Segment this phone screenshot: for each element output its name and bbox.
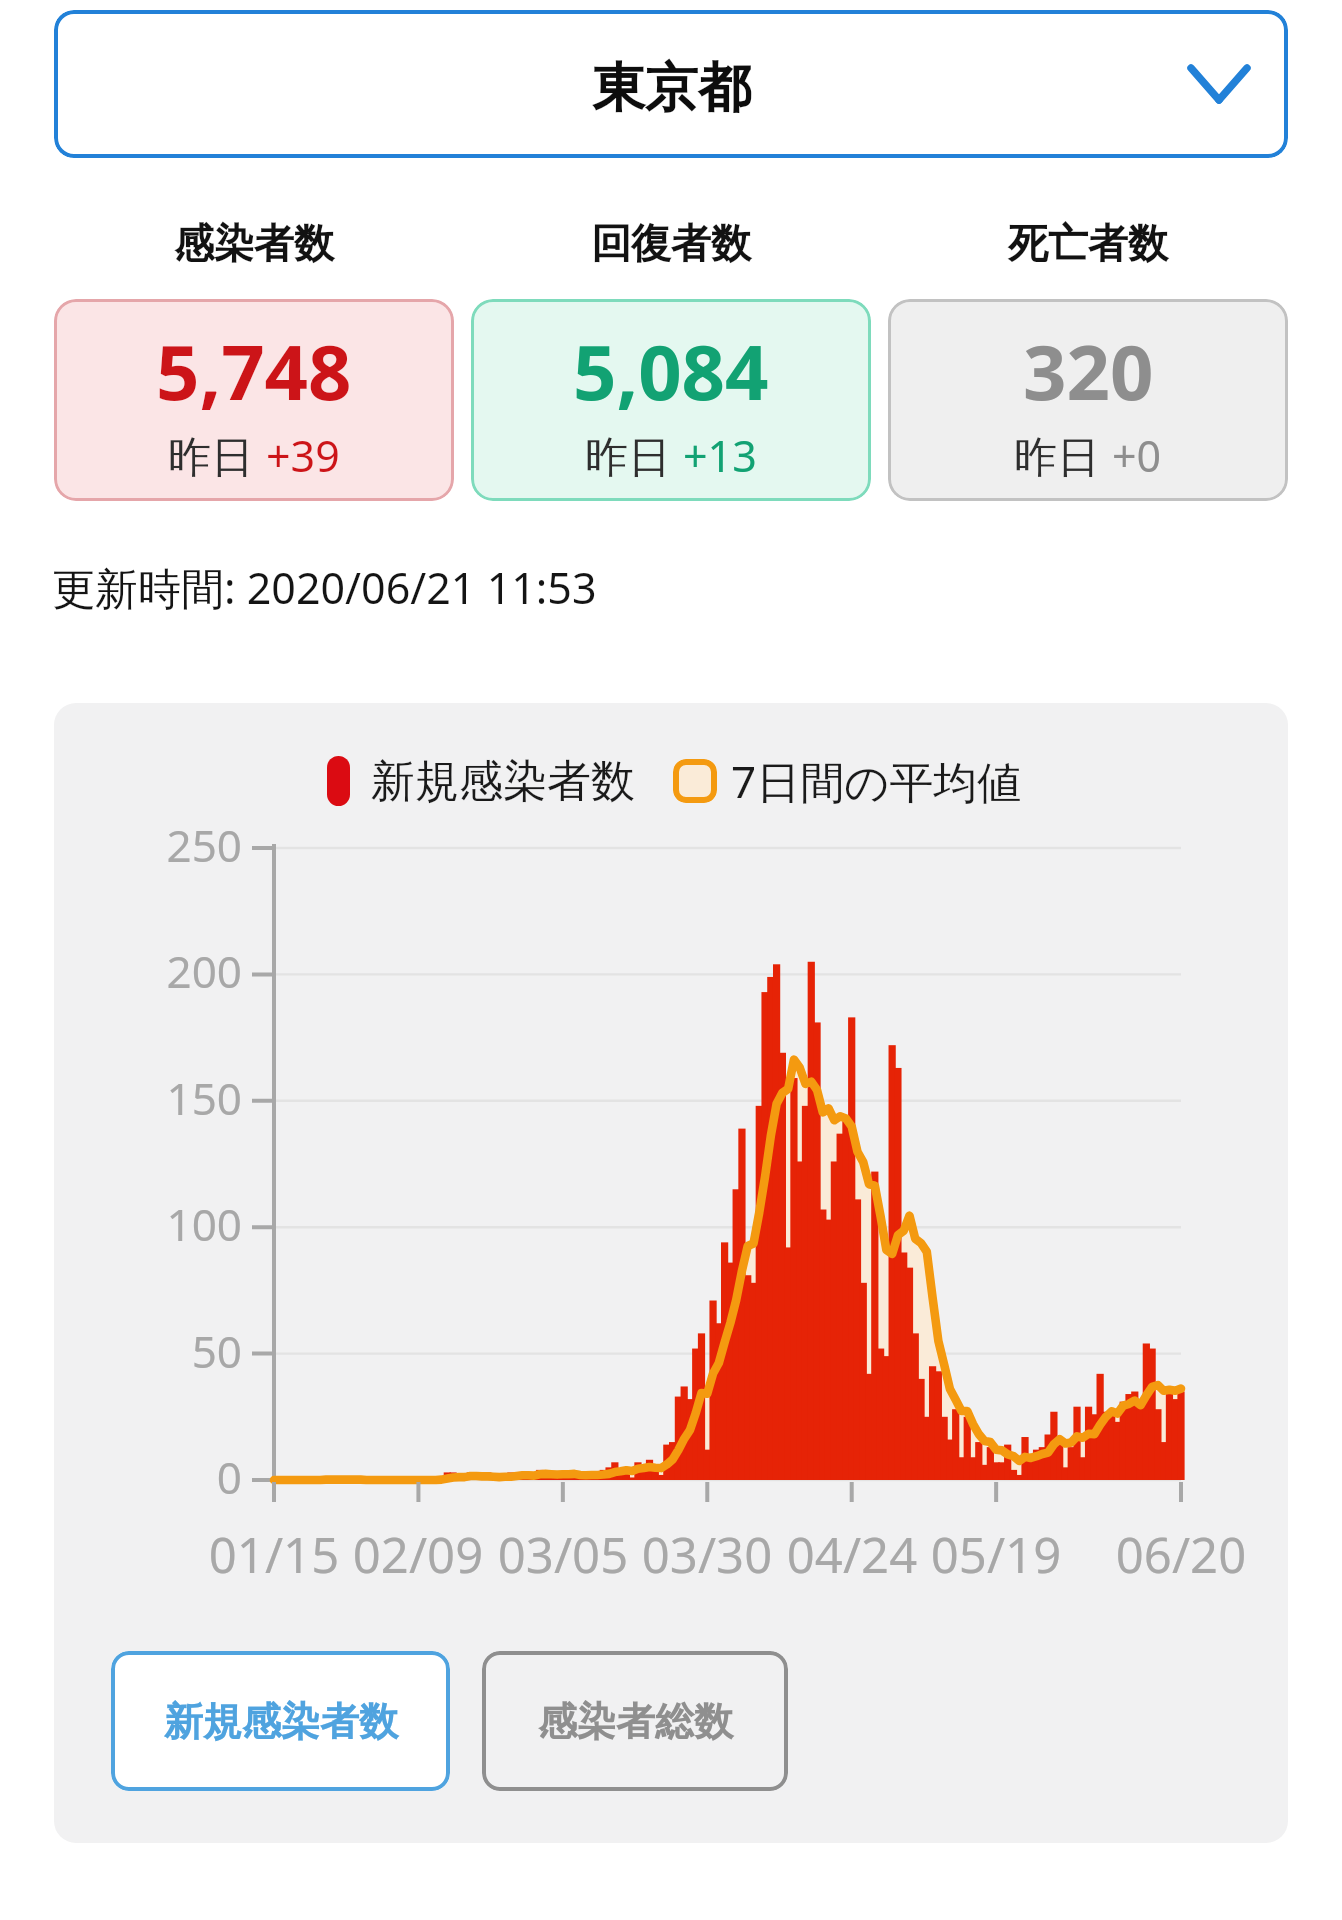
staticText: 250	[54, 815, 242, 875]
staticText: +13	[683, 426, 757, 485]
staticText: 昨日	[168, 426, 266, 485]
staticText: 更新時間: 2020/06/21 11:53	[52, 558, 597, 617]
staticText: 05/19	[896, 1521, 1096, 1588]
staticText: 昨日	[585, 426, 683, 485]
other: Select prefecture	[1177, 42, 1261, 126]
staticText: +0	[1112, 426, 1162, 485]
button[interactable]: 320	[888, 299, 1288, 501]
staticText: 01/15	[174, 1521, 374, 1588]
staticText: 03/05	[463, 1521, 663, 1588]
staticText: 06/20	[1081, 1521, 1281, 1588]
staticText: 感染者総数	[538, 1697, 733, 1746]
button[interactable]: 5,084	[471, 299, 871, 501]
staticText: 200	[54, 941, 242, 1001]
staticText: 7日間の平均値	[731, 751, 1022, 811]
staticText: 死亡者数	[1008, 218, 1168, 268]
staticText: 5,748	[156, 319, 352, 423]
staticText: 320	[1023, 319, 1154, 423]
staticText: 02/09	[318, 1521, 518, 1588]
staticText: 昨日	[1014, 426, 1112, 485]
staticText: 0	[54, 1447, 242, 1507]
staticText: 感染者数	[174, 218, 334, 268]
staticText: 150	[54, 1068, 242, 1128]
button[interactable]: 感染者総数	[482, 1651, 788, 1791]
staticText: 100	[54, 1194, 242, 1254]
staticText: 新規感染者数	[371, 754, 635, 809]
staticText: 新規感染者数	[164, 1697, 398, 1746]
staticText: 東京都	[592, 55, 751, 122]
staticText: 回復者数	[591, 218, 751, 268]
staticText: 50	[54, 1321, 242, 1381]
staticText: +39	[266, 426, 340, 485]
staticText: 04/24	[752, 1521, 952, 1588]
button[interactable]: 5,748	[54, 299, 454, 501]
staticText: 5,084	[573, 319, 769, 423]
button[interactable]: 東京都	[54, 10, 1288, 158]
staticText: 03/30	[607, 1521, 807, 1588]
button[interactable]: 新規感染者数	[111, 1651, 450, 1791]
